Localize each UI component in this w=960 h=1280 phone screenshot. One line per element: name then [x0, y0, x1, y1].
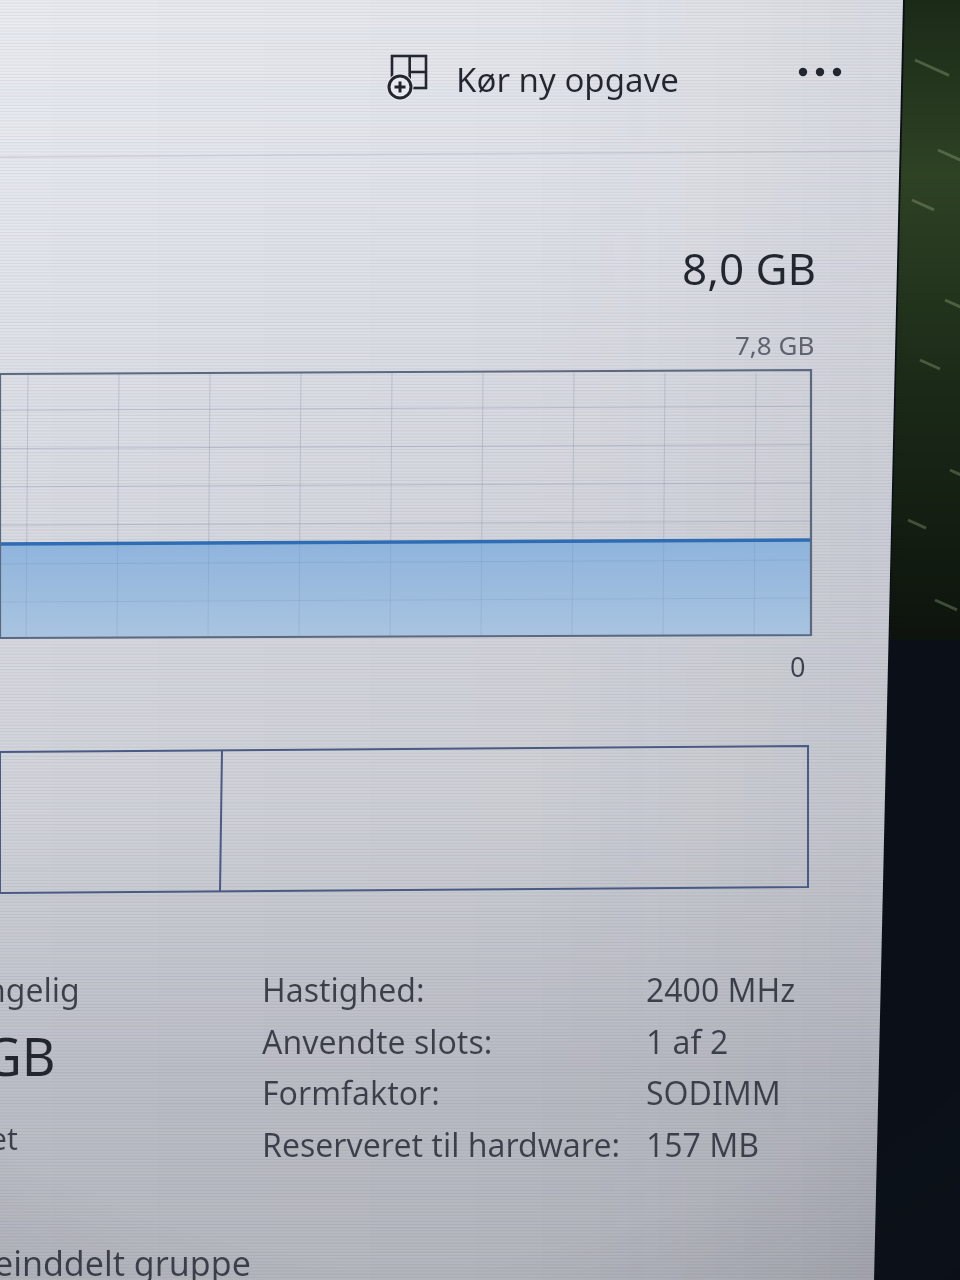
button[interactable]: Jobliste – hukommelse: [0, 0, 960, 1280]
